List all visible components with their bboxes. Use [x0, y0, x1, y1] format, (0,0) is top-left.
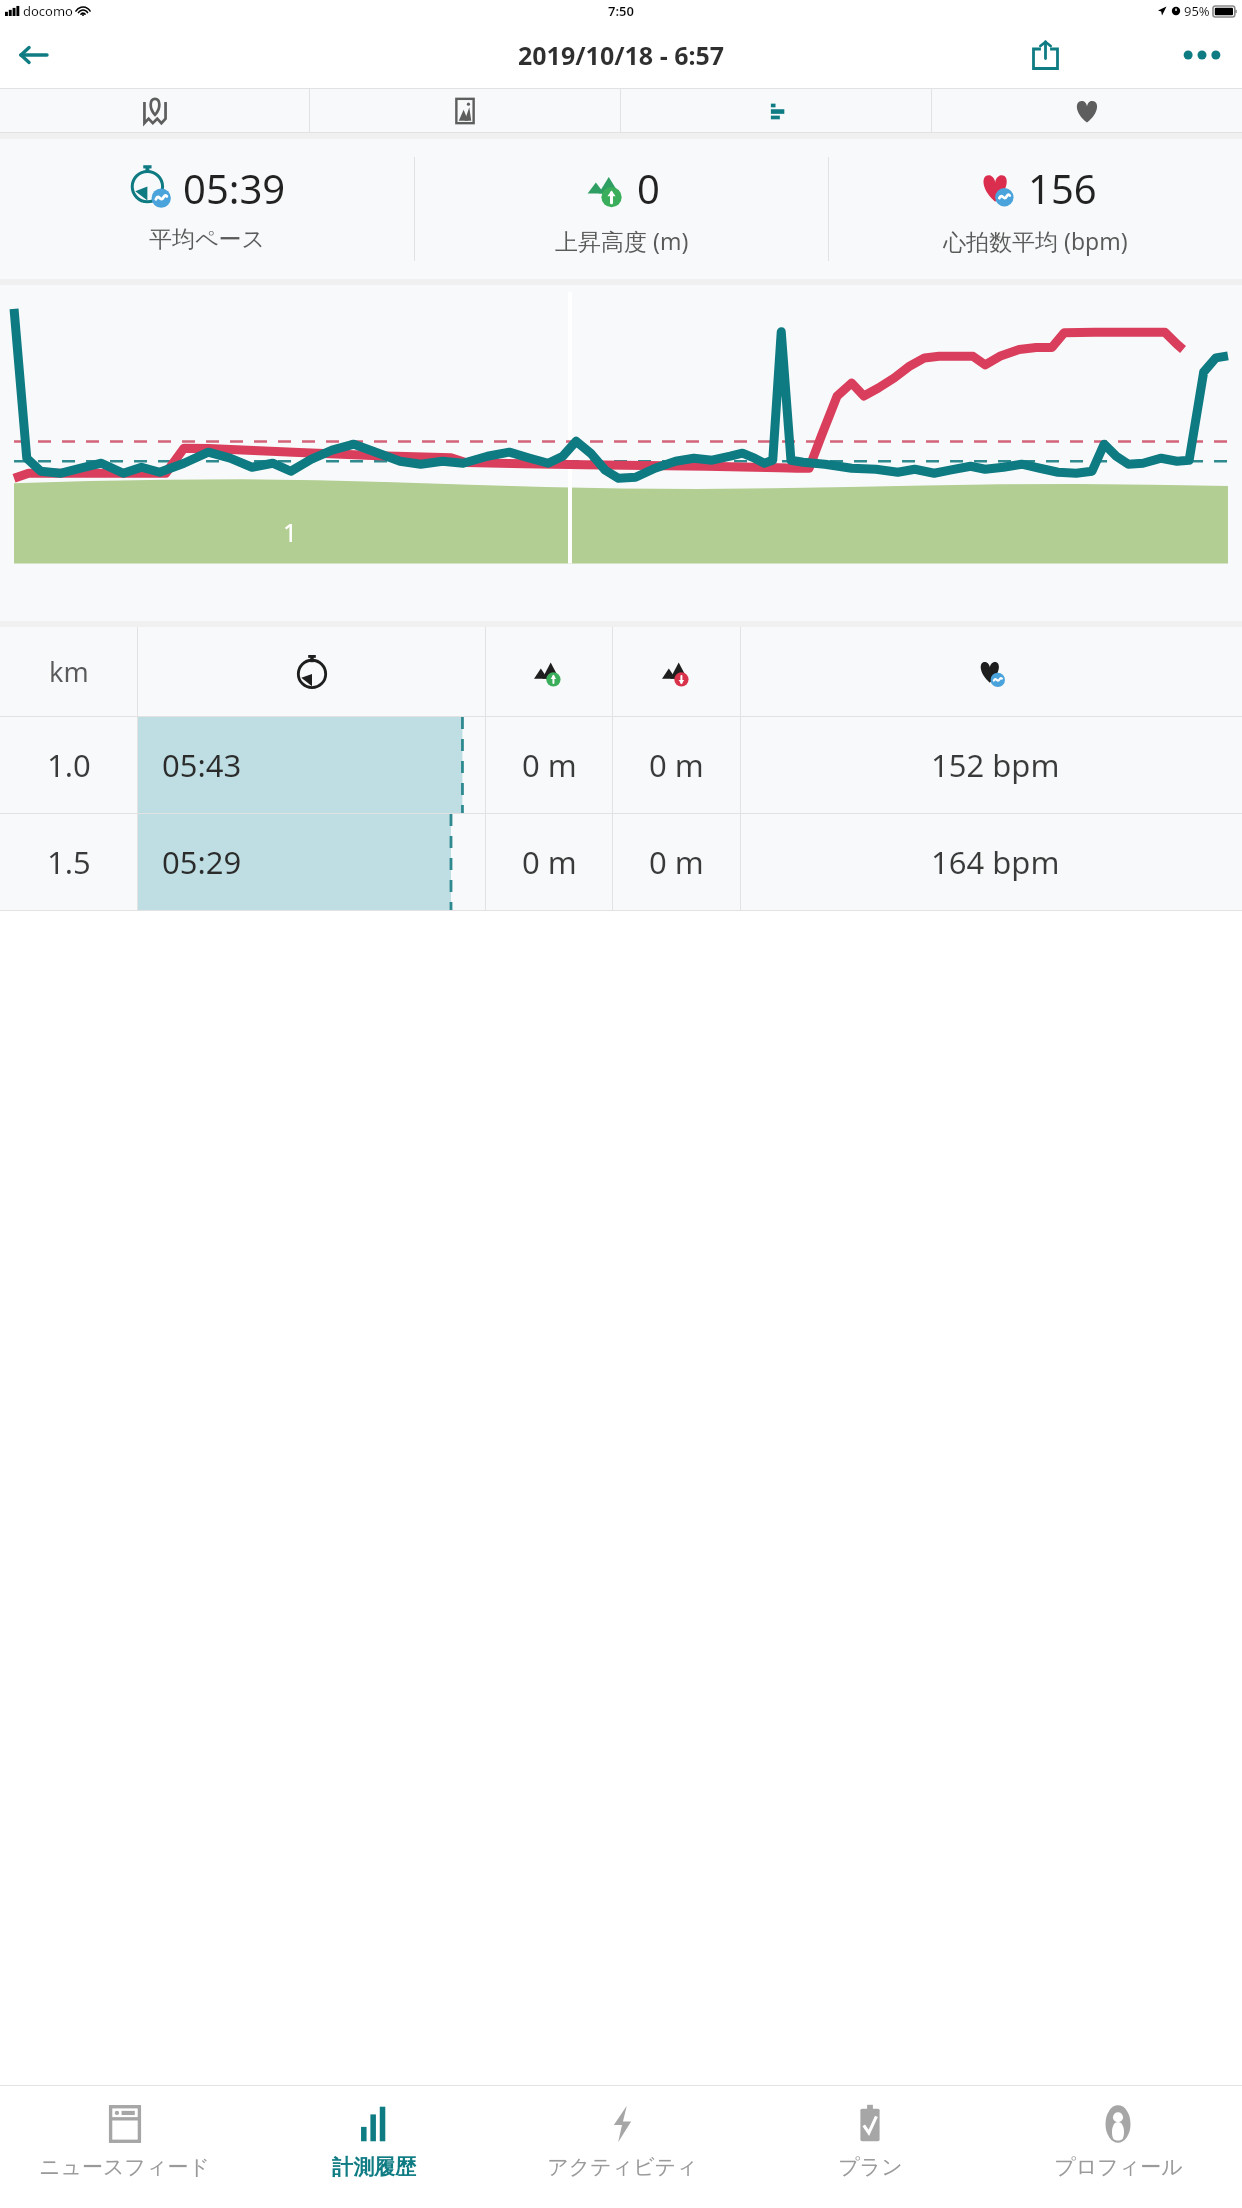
staticText: 0 m — [649, 841, 704, 883]
staticText: 計測履歴 — [332, 2154, 416, 2180]
staticText: 156 — [1028, 161, 1097, 215]
staticText: 0 — [637, 161, 660, 215]
button[interactable]: アクティビティ — [498, 2086, 746, 2208]
staticText: 1 — [283, 515, 298, 549]
staticText: 05:43 — [162, 744, 242, 786]
staticText: 05:29 — [162, 841, 242, 883]
staticText: km — [49, 653, 89, 690]
button[interactable]: 1.0 — [0, 717, 1242, 813]
staticText: 2019/10/18 - 6:57 — [518, 38, 725, 72]
staticText: 152 bpm — [931, 744, 1060, 786]
staticText: 上昇高度 (m) — [555, 225, 689, 256]
button[interactable]: 05:39 — [0, 139, 414, 279]
staticText: 0 m — [522, 744, 577, 786]
button[interactable]: ニュースフィード — [0, 2086, 249, 2208]
button[interactable]: 1.5 — [0, 814, 1242, 910]
staticText: 95% — [1184, 2, 1210, 20]
button[interactable]: 156 — [829, 139, 1242, 279]
staticText: プラン — [838, 2154, 903, 2180]
button[interactable]: Back — [0, 22, 66, 88]
staticText: アクティビティ — [547, 2154, 698, 2180]
staticText: 0 m — [649, 744, 704, 786]
staticText: 心拍数平均 (bpm) — [943, 225, 1128, 256]
button[interactable]: プラン — [746, 2086, 994, 2208]
staticText: 05:39 — [183, 161, 286, 215]
button[interactable]: More options — [1162, 21, 1242, 88]
staticText: 164 bpm — [931, 841, 1060, 883]
button[interactable]: Share — [1010, 21, 1080, 88]
staticText: 0 m — [522, 841, 577, 883]
button[interactable]: プロフィール — [994, 2086, 1242, 2208]
button[interactable]: 計測履歴 — [249, 2086, 498, 2208]
button[interactable]: 0 — [415, 139, 828, 279]
staticText: 7:50 — [608, 2, 634, 20]
staticText: 平均ペース — [149, 225, 266, 254]
staticText: プロフィール — [1054, 2154, 1183, 2180]
button[interactable]: Charts — [621, 89, 931, 132]
staticText: docomo — [23, 2, 73, 20]
button[interactable]: Photos — [310, 89, 620, 132]
staticText: 1.0 — [47, 744, 91, 786]
button[interactable]: Map — [0, 89, 309, 132]
button[interactable]: Heart rate — [932, 89, 1242, 132]
staticText: 1.5 — [47, 841, 91, 883]
staticText: ニュースフィード — [39, 2154, 210, 2180]
